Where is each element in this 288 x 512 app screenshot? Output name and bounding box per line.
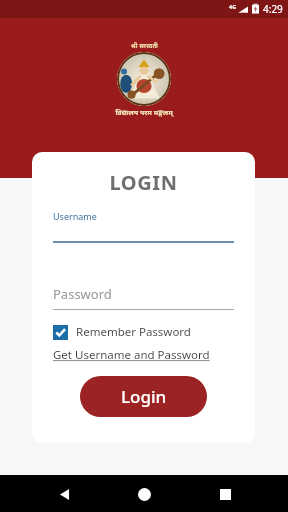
staticText: श्री सरस्वती: [131, 42, 158, 50]
staticText: Remember Password: [76, 324, 191, 340]
staticText: Username: [53, 210, 97, 222]
staticText: Login: [121, 385, 167, 408]
staticText: Get Username and Password: [53, 347, 210, 363]
button[interactable]: Get Username and Password: [53, 347, 210, 363]
staticText: 4G: [229, 3, 237, 10]
button[interactable]: Username: [53, 210, 234, 243]
button[interactable]: Remember Password: [53, 324, 234, 340]
staticText: विद्यालय परम मङ्गलम्: [115, 108, 173, 118]
button[interactable]: Back: [47, 477, 81, 511]
button[interactable]: Home: [127, 477, 161, 511]
staticText: 4:29: [263, 2, 283, 16]
button[interactable]: Login: [80, 376, 207, 417]
staticText: LOGIN: [32, 169, 255, 196]
button[interactable]: Password: [53, 285, 234, 310]
button[interactable]: Recent apps: [208, 477, 242, 511]
staticText: Password: [53, 285, 112, 303]
